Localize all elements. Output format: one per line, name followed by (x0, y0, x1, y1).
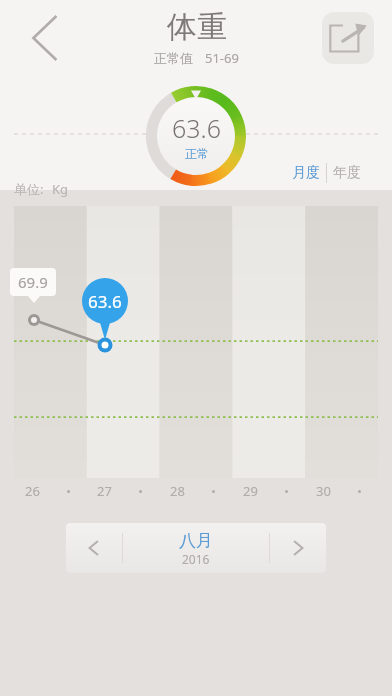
staticText: 26 (25, 482, 40, 500)
staticText: 69.9 (18, 272, 48, 292)
staticText: 正常 (185, 146, 209, 161)
staticText: 27 (97, 482, 112, 500)
button[interactable]: Next month (270, 523, 326, 573)
staticText: 63.6 (88, 290, 122, 313)
button[interactable]: 年度 (327, 160, 367, 186)
button[interactable]: Share (322, 12, 374, 64)
staticText: 29 (243, 482, 258, 500)
staticText: 体重 (167, 8, 227, 46)
staticText: 2016 (182, 551, 210, 567)
button[interactable]: Previous month (66, 523, 122, 573)
staticText: 月度 (292, 164, 320, 182)
button[interactable]: Back (12, 8, 72, 68)
staticText: 28 (170, 482, 185, 500)
staticText: 正常值 (154, 50, 193, 66)
staticText: 30 (316, 482, 331, 500)
staticText: Kg (52, 180, 69, 198)
button[interactable]: 月度 (286, 160, 326, 186)
button[interactable]: 八月 (123, 523, 269, 573)
staticText: 单位: (14, 180, 44, 198)
staticText: 63.6 (172, 111, 221, 145)
staticText: 51-69 (205, 49, 239, 67)
staticText: 八月 (179, 530, 213, 551)
staticText: 年度 (333, 164, 361, 182)
